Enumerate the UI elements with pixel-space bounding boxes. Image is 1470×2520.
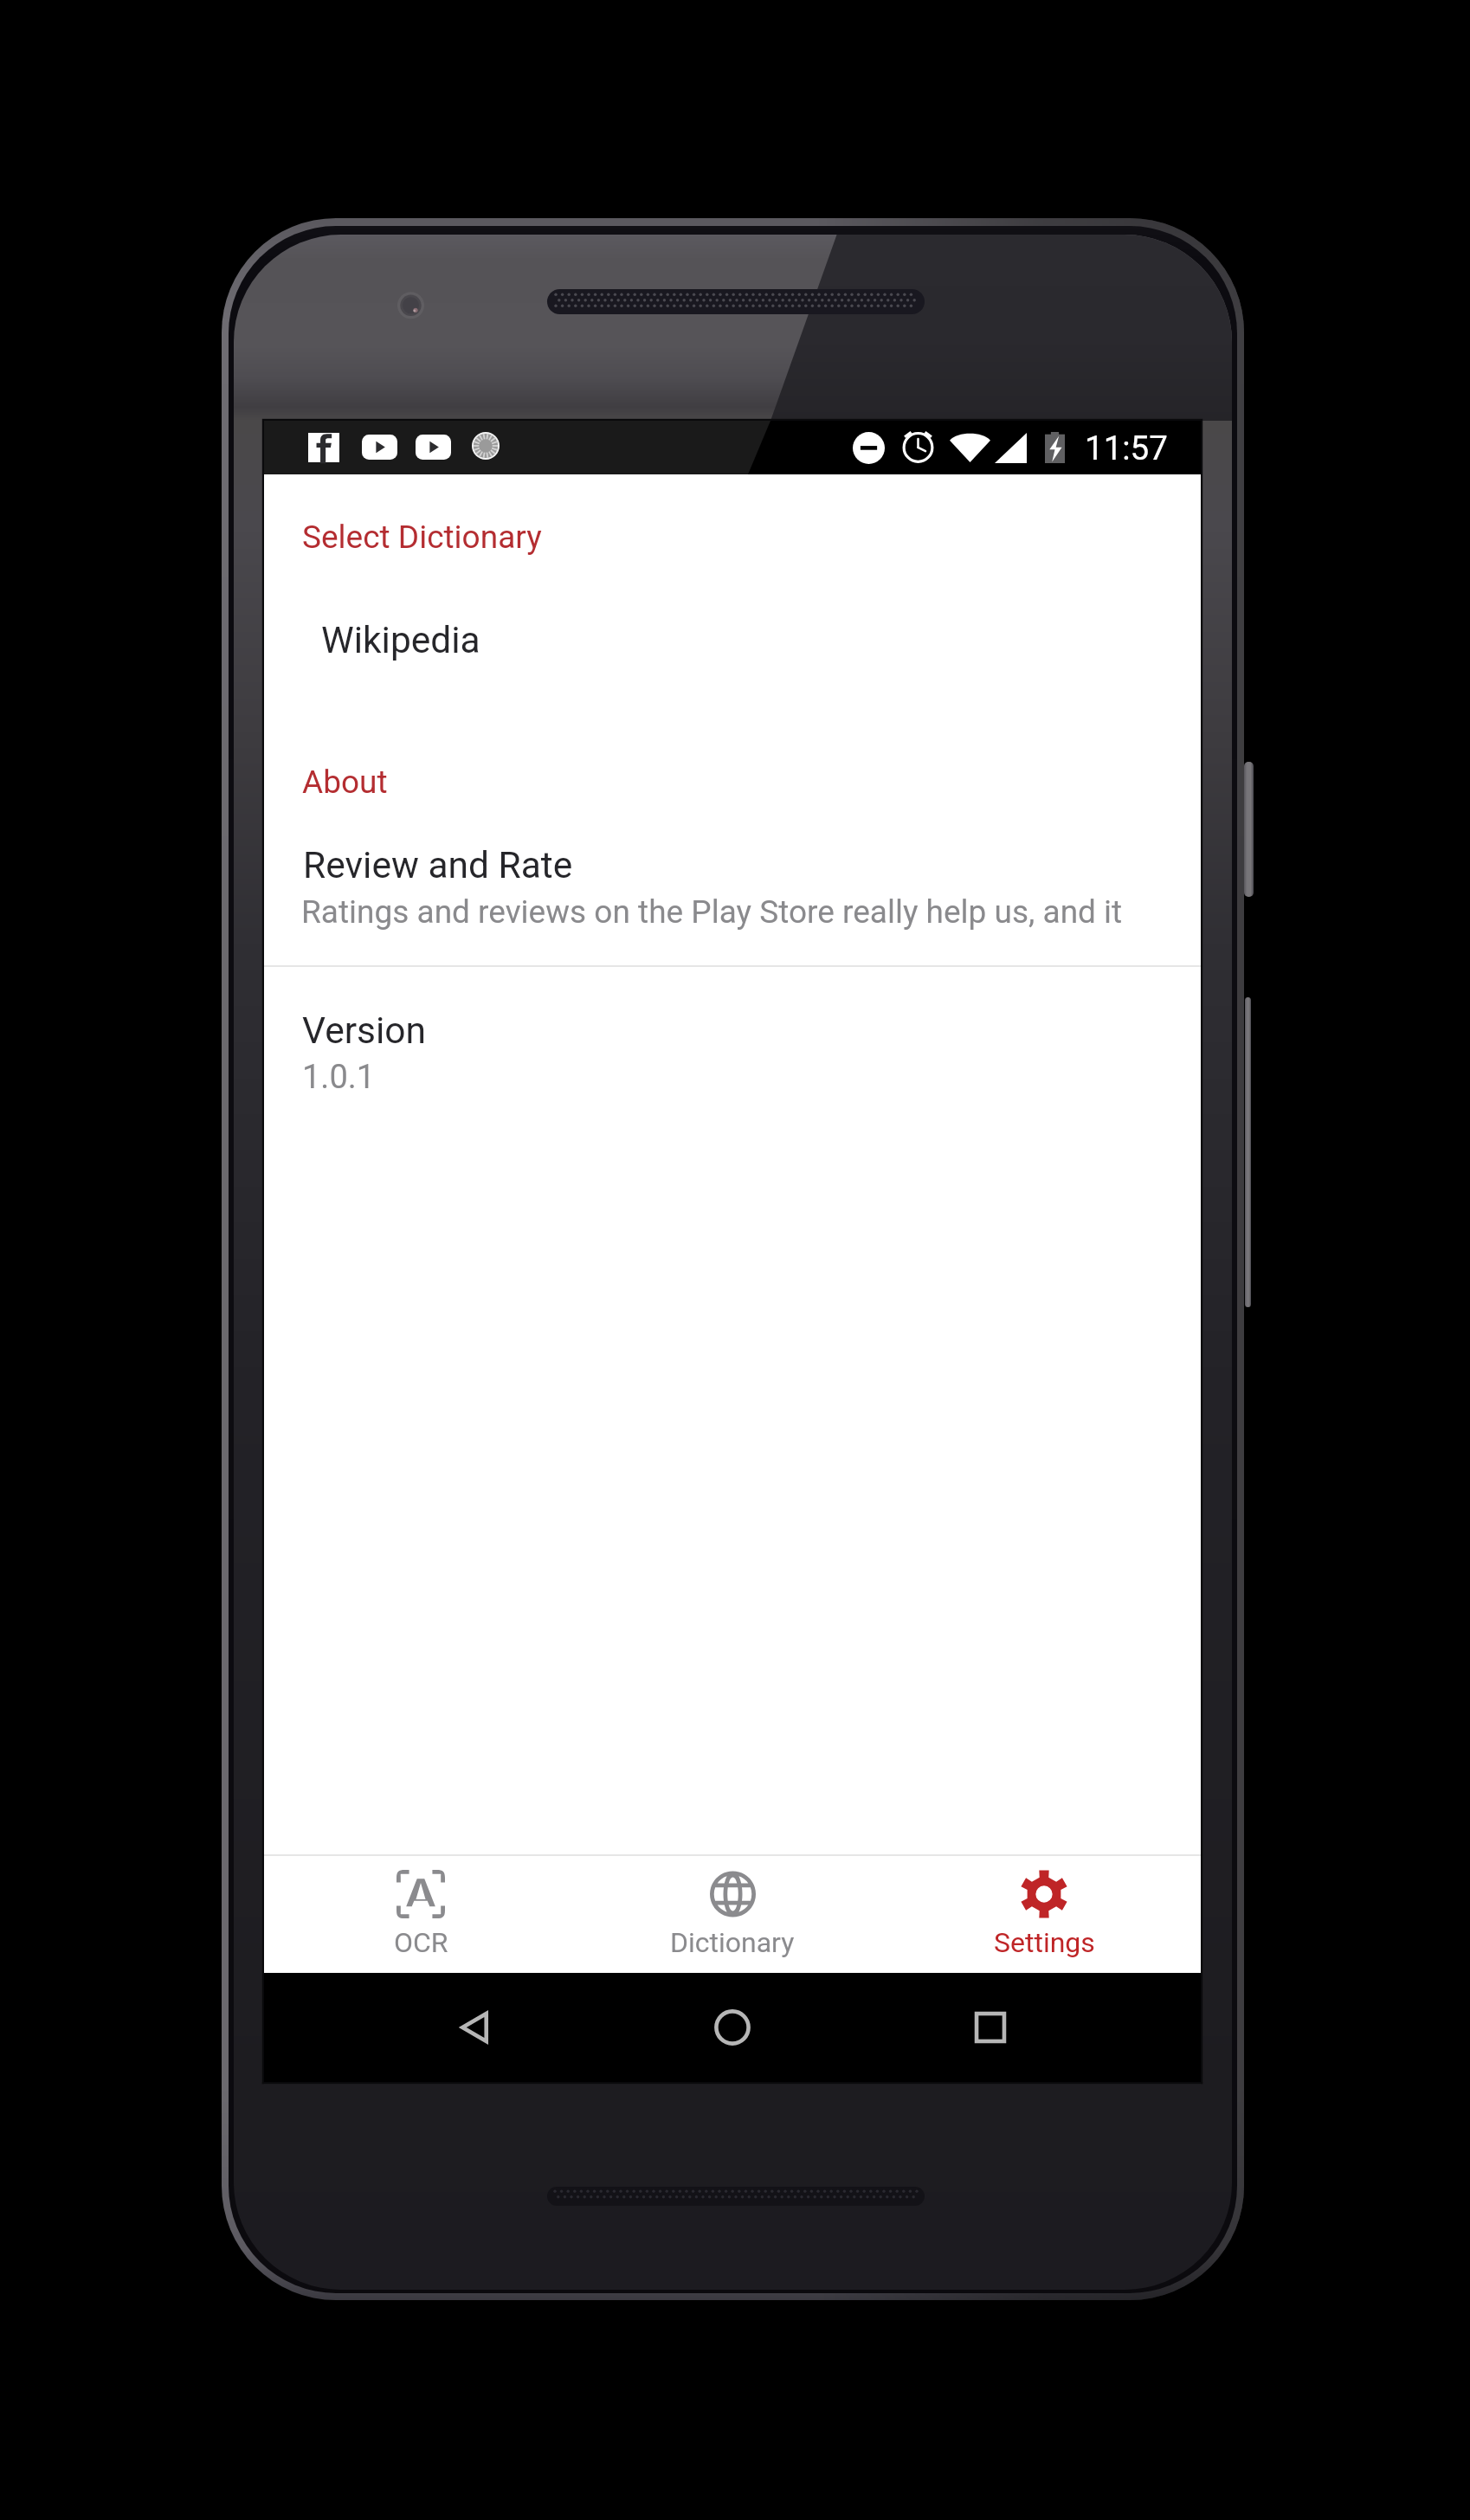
button[interactable]: Home	[680, 1975, 784, 2079]
staticText: Wikipedia	[321, 619, 480, 662]
staticText: OCR	[394, 1926, 448, 1959]
staticText: 11:57	[1085, 429, 1168, 467]
staticText: Dictionary	[670, 1926, 795, 1959]
staticText: About	[302, 764, 388, 801]
button[interactable]: Back	[422, 1975, 526, 2079]
button[interactable]: Dictionary	[577, 1854, 888, 1973]
button[interactable]: Recents	[938, 1975, 1042, 2079]
button[interactable]: Settings	[888, 1854, 1200, 1973]
button[interactable]: Review and Rate	[264, 827, 1201, 965]
button[interactable]: Wikipedia	[264, 602, 1201, 678]
staticText: Settings	[994, 1926, 1095, 1959]
button[interactable]: Version	[264, 967, 1201, 1105]
button[interactable]: OCR	[265, 1854, 577, 1973]
staticText: Review and Rate	[303, 844, 573, 887]
staticText: Select Dictionary	[302, 519, 542, 556]
staticText: 1.0.1	[302, 1058, 376, 1097]
staticText: Version	[302, 1009, 427, 1053]
staticText: Ratings and reviews on the Play Store re…	[301, 893, 1123, 931]
